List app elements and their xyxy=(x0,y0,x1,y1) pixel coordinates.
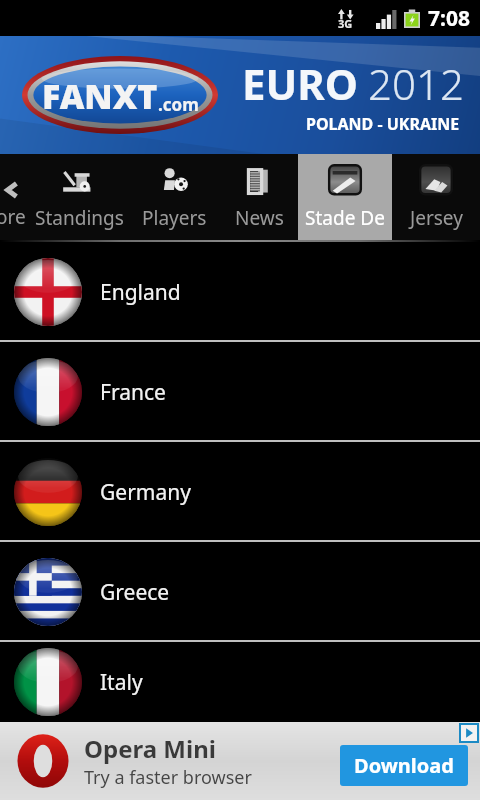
staticText: EURO xyxy=(242,55,359,112)
button[interactable]: News xyxy=(220,154,298,242)
button[interactable]: Greece xyxy=(0,542,480,642)
staticText: Standings xyxy=(35,205,124,231)
button[interactable]: Stade De xyxy=(298,154,392,242)
button[interactable]: Jersey xyxy=(392,154,480,242)
staticText: Jersey xyxy=(410,205,463,231)
staticText: .com xyxy=(158,93,199,116)
button[interactable]: Italy xyxy=(0,642,480,722)
button[interactable]: Previous tabs xyxy=(0,154,30,242)
staticText: 3G xyxy=(338,16,353,31)
staticText: England xyxy=(100,278,181,307)
button[interactable]: Download xyxy=(340,745,468,786)
staticText: Download xyxy=(354,752,454,779)
staticText: News xyxy=(235,205,284,231)
staticText: Stade De xyxy=(305,205,385,231)
staticText: Greece xyxy=(100,578,170,607)
button[interactable]: England xyxy=(0,242,480,342)
button[interactable]: France xyxy=(0,342,480,442)
button[interactable]: Germany xyxy=(0,442,480,542)
staticText: ore xyxy=(0,204,26,230)
staticText: Italy xyxy=(100,668,143,697)
staticText: Players xyxy=(142,205,207,231)
button[interactable]: Opera Mini xyxy=(0,722,480,800)
staticText: POLAND - UKRAINE xyxy=(306,113,460,135)
staticText: Germany xyxy=(100,478,191,507)
staticText: Opera Mini xyxy=(84,732,216,765)
button[interactable]: Standings xyxy=(30,154,128,242)
staticText: FANXT xyxy=(42,73,158,119)
staticText: 7:08 xyxy=(428,4,470,33)
button[interactable]: Players xyxy=(128,154,220,242)
staticText: Try a faster browser xyxy=(84,765,252,790)
staticText: 2012 xyxy=(368,55,464,112)
staticText: France xyxy=(100,378,166,407)
